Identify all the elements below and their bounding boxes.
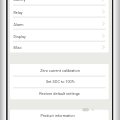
button[interactable]: Product information [10, 110, 109, 120]
button[interactable]: Set SOC to 100% [10, 76, 109, 87]
staticText: Display [13, 34, 26, 38]
button[interactable]: Restore default settings [10, 88, 109, 99]
staticText: Misc [13, 46, 22, 50]
staticText: Zero current calibration [40, 68, 80, 73]
button[interactable]: Alarm [10, 18, 109, 30]
staticText: Set SOC to 100% [46, 79, 75, 84]
staticText: Alarm [13, 22, 24, 26]
button[interactable]: Relay [10, 6, 109, 18]
button[interactable]: Zero current calibration [10, 65, 109, 76]
staticText: Relay [13, 10, 23, 14]
staticText: Battery [13, 0, 26, 2]
staticText: Restore default settings [39, 91, 80, 96]
button[interactable]: Display [10, 30, 109, 42]
button[interactable]: Misc [10, 41, 109, 53]
button[interactable]: Battery [10, 0, 109, 5]
staticText: Product information [40, 113, 75, 118]
